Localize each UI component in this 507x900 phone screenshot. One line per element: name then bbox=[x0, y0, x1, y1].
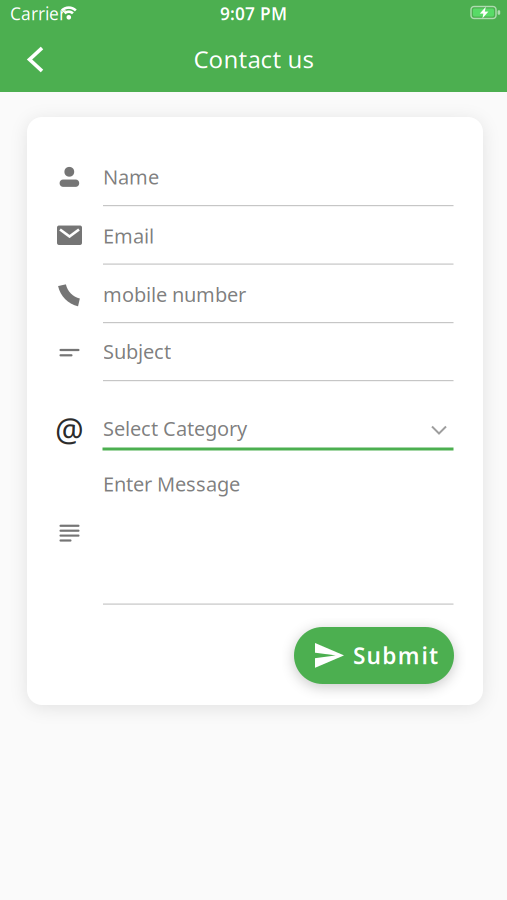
staticText: Select Category bbox=[103, 415, 247, 442]
button[interactable]: mobile number bbox=[103, 281, 454, 334]
button[interactable]: Submit bbox=[294, 627, 454, 684]
staticText: @ bbox=[55, 408, 84, 451]
button[interactable]: Email bbox=[103, 222, 454, 275]
staticText: Carrier bbox=[10, 2, 66, 25]
button[interactable]: Subject bbox=[103, 338, 454, 392]
staticText: Subject bbox=[103, 338, 171, 365]
staticText: Email bbox=[103, 222, 154, 249]
staticText: Name bbox=[103, 163, 159, 190]
button[interactable]: Back bbox=[13, 37, 57, 81]
staticText: 9:07 PM bbox=[220, 2, 287, 25]
button[interactable]: Select Category bbox=[103, 415, 507, 900]
staticText: Enter Message bbox=[103, 470, 240, 497]
button[interactable]: Enter Message bbox=[103, 470, 454, 604]
staticText: Submit bbox=[353, 640, 438, 670]
staticText: Contact us bbox=[193, 43, 313, 75]
button[interactable]: Name bbox=[103, 163, 454, 217]
staticText: mobile number bbox=[103, 281, 246, 308]
